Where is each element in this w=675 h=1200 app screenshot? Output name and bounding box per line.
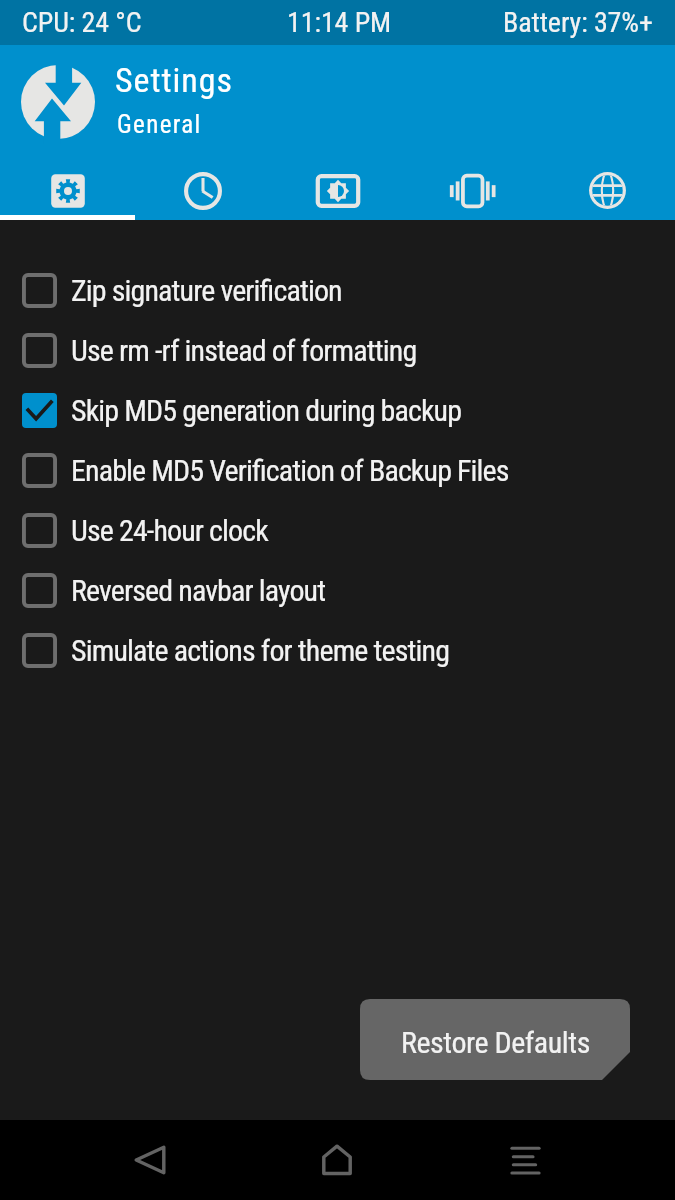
button[interactable]: Screen bbox=[270, 155, 405, 220]
staticText: Enable MD5 Verification of Backup Files bbox=[71, 453, 509, 488]
button[interactable]: Use 24-hour clock bbox=[0, 500, 675, 560]
staticText: Use 24-hour clock bbox=[71, 513, 268, 548]
staticText: Battery: 37%+ bbox=[503, 6, 653, 39]
button[interactable]: Restore Defaults bbox=[360, 999, 630, 1080]
button[interactable]: Enable MD5 Verification of Backup Files bbox=[0, 440, 675, 500]
staticText: Settings bbox=[115, 60, 233, 100]
button[interactable]: Back bbox=[110, 1120, 190, 1200]
button[interactable]: Menu bbox=[485, 1120, 565, 1200]
button[interactable]: Simulate actions for theme testing bbox=[0, 620, 675, 680]
button[interactable]: Settings bbox=[0, 155, 135, 220]
staticText: Skip MD5 generation during backup bbox=[71, 393, 462, 428]
button[interactable]: Time bbox=[135, 155, 270, 220]
button[interactable]: Use rm -rf instead of formatting bbox=[0, 320, 675, 380]
button[interactable]: Vibration bbox=[405, 155, 540, 220]
staticText: Use rm -rf instead of formatting bbox=[71, 333, 417, 368]
button[interactable]: Reversed navbar layout bbox=[0, 560, 675, 620]
button[interactable]: Home bbox=[297, 1120, 377, 1200]
button[interactable]: Skip MD5 generation during backup bbox=[0, 380, 675, 440]
staticText: Reversed navbar layout bbox=[71, 573, 326, 608]
staticText: General bbox=[117, 110, 202, 139]
staticText: 11:14 PM bbox=[287, 6, 392, 39]
button[interactable]: Zip signature verification bbox=[0, 260, 675, 320]
button[interactable]: Language bbox=[540, 155, 675, 220]
staticText: Restore Defaults bbox=[401, 1025, 590, 1060]
staticText: Zip signature verification bbox=[71, 273, 342, 308]
staticText: Simulate actions for theme testing bbox=[71, 633, 450, 668]
staticText: CPU: 24 °C bbox=[22, 6, 142, 39]
